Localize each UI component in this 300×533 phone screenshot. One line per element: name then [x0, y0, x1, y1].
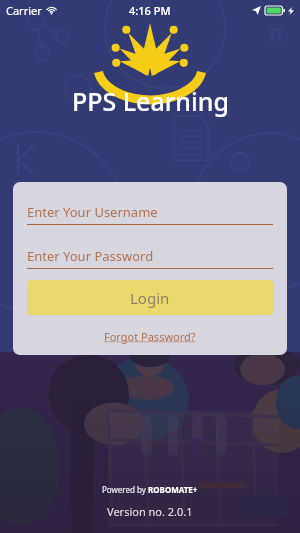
staticText: Forgot Password?	[104, 329, 196, 344]
staticText: PPS Learning	[72, 84, 229, 118]
button[interactable]: Forgot Password?	[100, 327, 200, 346]
staticText: Enter Your Password	[27, 247, 154, 265]
button[interactable]: Login	[27, 280, 273, 315]
staticText: Enter Your Username	[27, 203, 158, 221]
staticText: Login	[130, 288, 170, 308]
staticText: ROBOMATE+	[148, 484, 198, 495]
staticText: 4:16 PM	[129, 3, 171, 18]
staticText: Carrier	[6, 3, 42, 18]
staticText: Powered by	[102, 484, 148, 495]
button[interactable]: Enter Your Username	[27, 200, 273, 224]
button[interactable]: Enter Your Password	[27, 244, 273, 268]
staticText: Version no. 2.0.1	[107, 504, 193, 519]
